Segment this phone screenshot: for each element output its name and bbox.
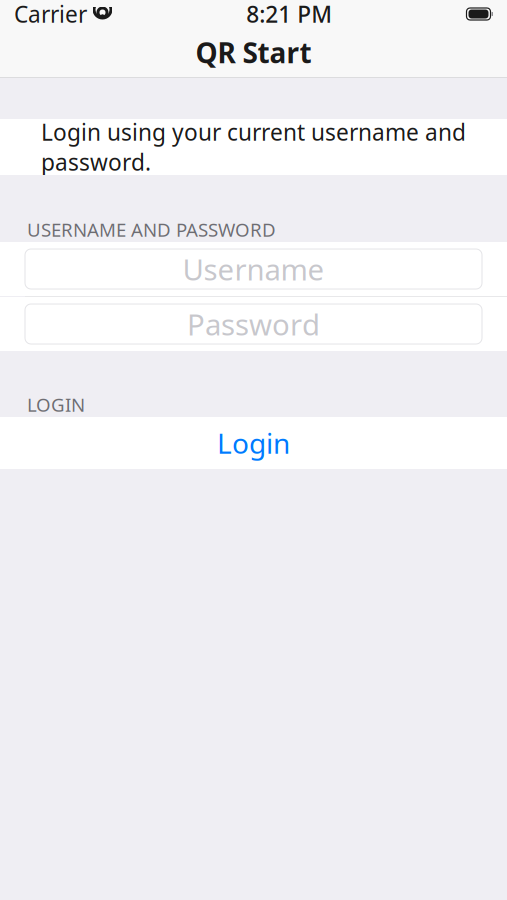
staticText: 8:21 PM	[246, 0, 332, 29]
staticText: USERNAME AND PASSWORD	[27, 217, 276, 242]
staticText: Carrier	[14, 0, 87, 29]
button[interactable]: Login	[0, 417, 507, 469]
staticText: QR Start	[195, 34, 311, 71]
button[interactable]: Username	[0, 242, 507, 296]
staticText: Password	[187, 304, 320, 343]
button[interactable]: Password	[0, 297, 507, 351]
staticText	[87, 0, 93, 29]
staticText: Login	[217, 424, 290, 462]
staticText: Login using your current username and pa…	[41, 117, 466, 177]
staticText: Username	[182, 249, 324, 288]
staticText: LOGIN	[27, 392, 85, 417]
